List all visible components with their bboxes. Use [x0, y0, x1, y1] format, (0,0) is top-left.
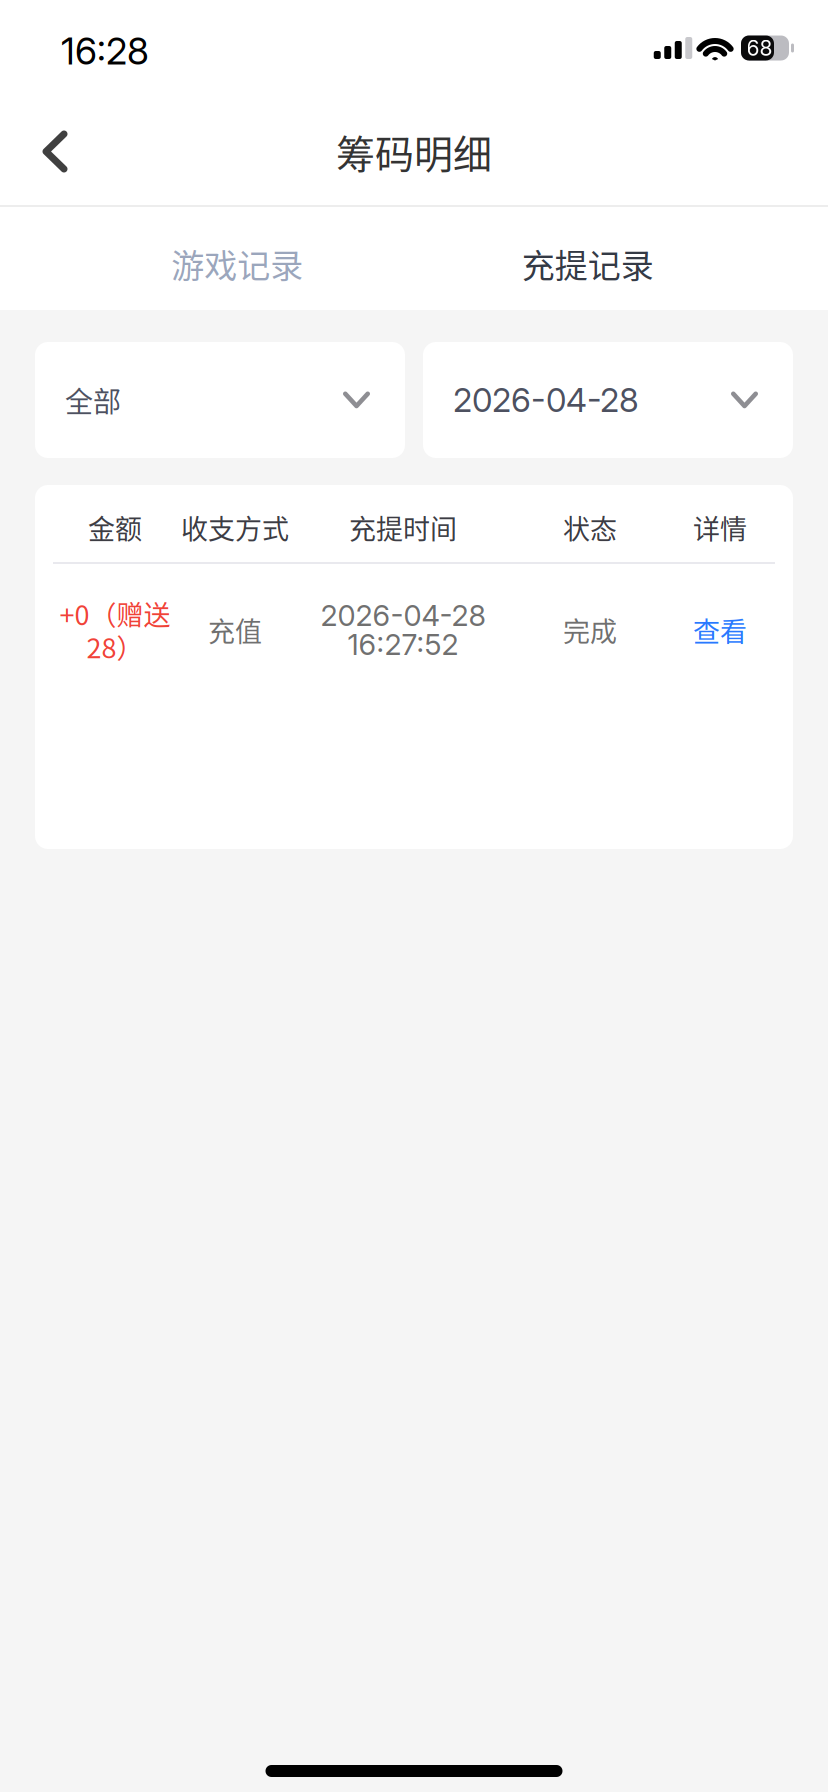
staticText: 详情 — [693, 508, 747, 547]
button[interactable]: 充提记录 — [412, 207, 763, 310]
button[interactable]: 2026-04-28 — [423, 342, 793, 458]
staticText: 28） — [86, 627, 143, 666]
staticText: 筹码明细 — [336, 123, 492, 180]
staticText: 68 — [746, 35, 772, 61]
staticText: 16:27:52 — [347, 627, 458, 662]
staticText: 完成 — [563, 610, 617, 650]
staticText: +0（赠送 — [59, 594, 170, 633]
button[interactable]: 游戏记录 — [62, 207, 412, 310]
staticText: 金额 — [88, 508, 142, 547]
staticText: 16:28 — [61, 29, 149, 73]
button[interactable]: 查看 — [671, 582, 769, 678]
staticText: 查看 — [693, 610, 747, 650]
staticText: 充提记录 — [522, 240, 654, 287]
staticText: 2026-04-28 — [453, 380, 639, 420]
staticText: 2026-04-28 — [320, 598, 485, 633]
staticText: 充提时间 — [349, 508, 457, 547]
staticText: 全部 — [65, 380, 121, 420]
staticText: 游戏记录 — [171, 240, 303, 287]
staticText: 充值 — [208, 610, 262, 650]
staticText: 状态 — [563, 508, 617, 547]
button[interactable]: 返回 — [12, 108, 98, 194]
button[interactable]: 全部 — [35, 342, 405, 458]
staticText: 收支方式 — [181, 508, 289, 547]
